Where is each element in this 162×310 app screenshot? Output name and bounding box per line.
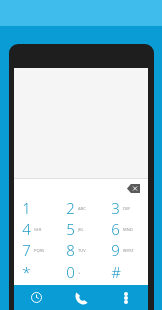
button[interactable]: 0: [58, 261, 103, 283]
staticText: 7: [22, 240, 31, 260]
button[interactable]: Dial: [58, 285, 103, 310]
button[interactable]: Recents: [14, 285, 58, 310]
staticText: 1: [22, 198, 31, 218]
staticText: *: [22, 262, 31, 282]
staticText: +: [78, 270, 81, 275]
button[interactable]: 8: [58, 239, 103, 261]
button[interactable]: 1: [14, 197, 58, 218]
staticText: 8: [66, 240, 75, 260]
button[interactable]: 6: [103, 218, 148, 239]
staticText: 5: [66, 219, 75, 239]
button[interactable]: 5: [58, 218, 103, 239]
button[interactable]: #: [103, 261, 148, 283]
button[interactable]: 9: [103, 239, 148, 261]
staticText: WXYZ: [123, 248, 134, 253]
staticText: #: [111, 262, 121, 282]
staticText: MNO: [123, 227, 133, 232]
button[interactable]: 7: [14, 239, 58, 261]
staticText: 0: [66, 262, 75, 282]
staticText: 9: [111, 240, 120, 260]
button[interactable]: 3: [103, 197, 148, 218]
button[interactable]: Backspace: [123, 180, 143, 196]
button[interactable]: 2: [58, 197, 103, 218]
staticText: DEF: [123, 206, 131, 211]
button[interactable]: 4: [14, 218, 58, 239]
staticText: PQRS: [34, 248, 45, 253]
staticText: 4: [22, 219, 31, 239]
staticText: GHI: [34, 227, 42, 232]
staticText: 6: [111, 219, 120, 239]
staticText: TUV: [78, 248, 86, 253]
button[interactable]: More options: [103, 285, 148, 310]
button[interactable]: *: [14, 261, 58, 283]
staticText: JKL: [78, 227, 84, 232]
staticText: ABC: [78, 206, 86, 211]
staticText: 3: [111, 198, 120, 218]
staticText: 2: [66, 198, 75, 218]
